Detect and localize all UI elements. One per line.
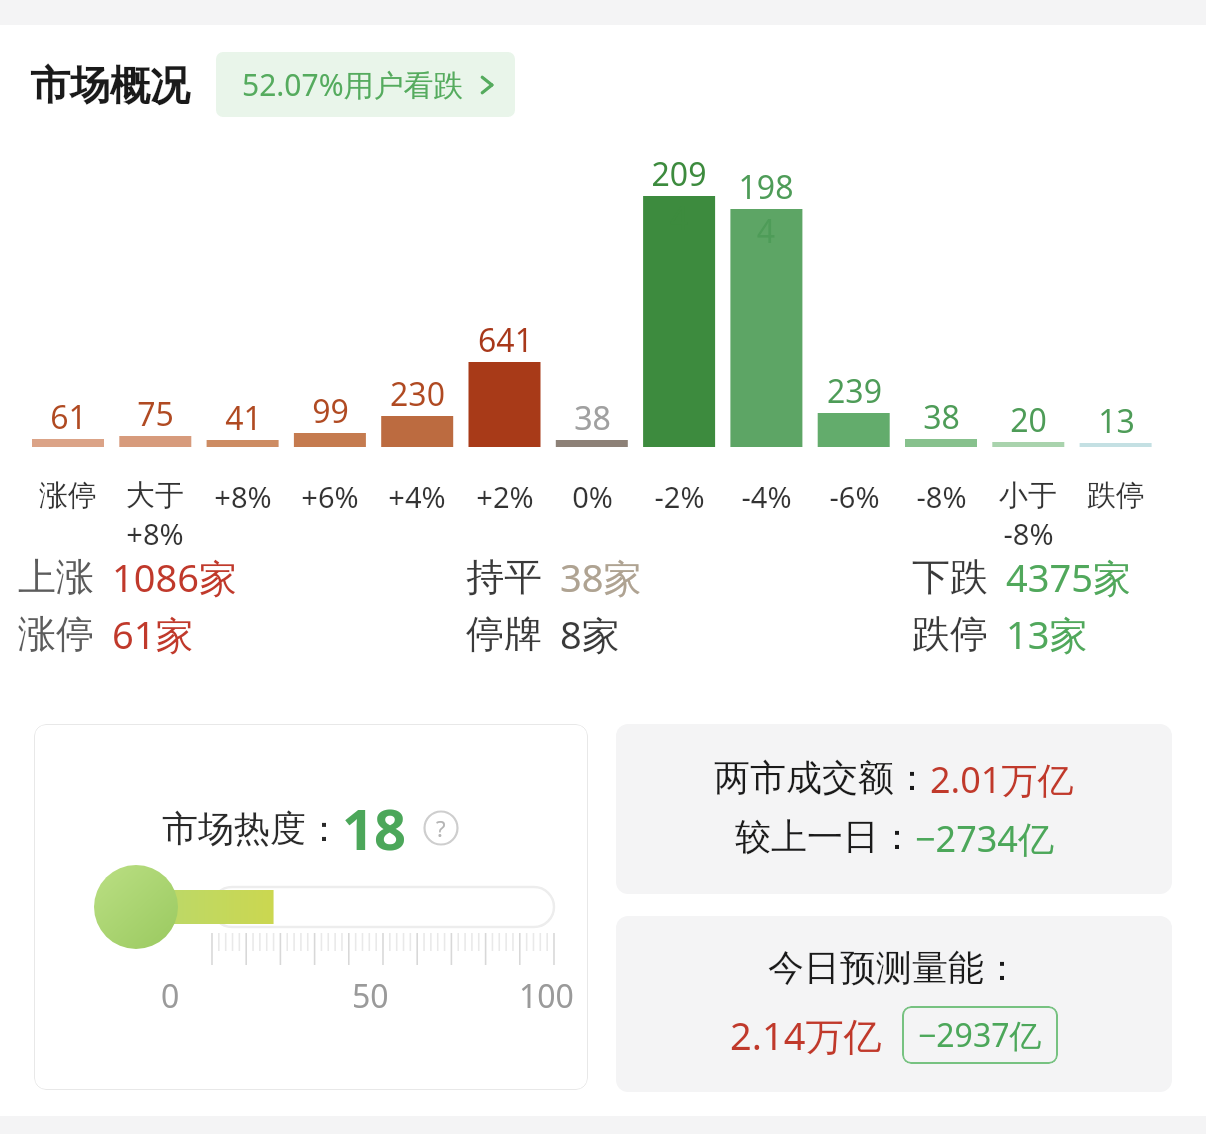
button[interactable]: 说明 (423, 810, 459, 846)
staticText: 涨停 (18, 610, 94, 658)
staticText: 61 (50, 395, 87, 439)
staticText: -8% (1003, 514, 1054, 553)
staticText: 2094 (643, 152, 715, 240)
staticText: 1984 (730, 165, 802, 253)
staticText: 41 (225, 396, 262, 440)
staticText: ? (436, 813, 446, 843)
staticText: 38 (574, 396, 611, 440)
staticText: −2937亿 (918, 1013, 1042, 1057)
staticText: 61家 (112, 608, 194, 660)
staticText: +2% (476, 477, 534, 516)
staticText: −2734亿 (915, 814, 1054, 863)
staticText: +6% (301, 477, 359, 516)
staticText: 2.14万亿 (730, 1009, 882, 1061)
staticText: +4% (388, 477, 446, 516)
staticText: -2% (654, 477, 705, 516)
staticText: 跌停 (1087, 477, 1145, 514)
button[interactable]: 今日预测量能： (616, 916, 1172, 1092)
staticText: 大于 (126, 477, 184, 514)
staticText: 38 (923, 395, 960, 439)
button[interactable]: 52.07%用户看跌 (216, 52, 515, 117)
staticText: -8% (916, 477, 967, 516)
staticText: 100 (519, 974, 574, 1018)
staticText: 涨停 (39, 477, 97, 514)
staticText: 18 (342, 790, 407, 866)
staticText: 13家 (1006, 608, 1088, 660)
staticText: 小于 (999, 477, 1057, 514)
staticText: +8% (214, 477, 272, 516)
staticText: 市场概况 (30, 60, 190, 110)
staticText: 今日预测量能： (768, 945, 1020, 990)
button[interactable]: 两市成交额： (616, 724, 1172, 894)
staticText: 50 (352, 974, 389, 1018)
staticText: 持平 (466, 553, 542, 601)
staticText: +8% (126, 514, 184, 553)
staticText: 99 (312, 389, 349, 433)
staticText: 38家 (560, 551, 642, 603)
staticText: 市场热度： (162, 806, 342, 851)
staticText: 0% (572, 477, 613, 516)
staticText: 20 (1010, 398, 1047, 442)
staticText: 两市成交额： (714, 755, 930, 800)
staticText: 8家 (560, 608, 620, 660)
button[interactable]: 市场热度： (34, 724, 588, 1090)
staticText: 230 (390, 372, 445, 416)
staticText: 75 (137, 392, 174, 436)
staticText: -4% (741, 477, 792, 516)
staticText: 较上一日： (735, 814, 915, 859)
staticText: 上涨 (18, 553, 94, 601)
staticText: 52.07%用户看跌 (242, 64, 464, 105)
staticText: 下跌 (912, 553, 988, 601)
staticText: 239 (827, 369, 882, 413)
staticText: 2.01万亿 (930, 755, 1074, 804)
staticText: 641 (478, 318, 533, 362)
staticText: 13 (1098, 399, 1135, 443)
staticText: -6% (829, 477, 880, 516)
staticText: 跌停 (912, 610, 988, 658)
staticText: 4375家 (1006, 551, 1131, 603)
staticText: 停牌 (466, 610, 542, 658)
staticText: 0 (161, 974, 180, 1018)
staticText: 1086家 (112, 551, 237, 603)
